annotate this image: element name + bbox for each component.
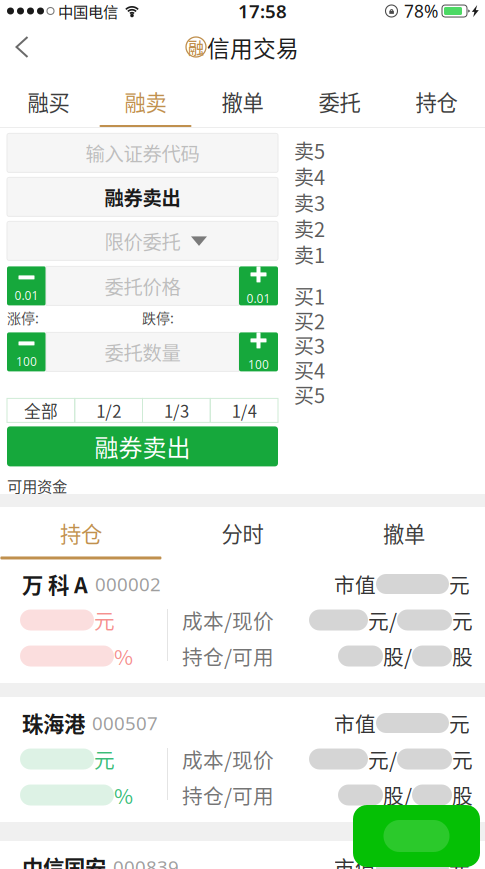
staticText: 市值: [334, 852, 376, 869]
staticText: 17:58: [238, 0, 287, 23]
staticText: 买5: [294, 380, 325, 409]
staticText: 元: [94, 605, 115, 635]
button[interactable]: 返回: [0, 22, 45, 72]
staticText: 万 科 A: [22, 569, 88, 599]
staticText: 100: [16, 353, 37, 369]
staticText: 持仓: [60, 518, 102, 548]
staticText: 跌停:: [142, 307, 174, 328]
staticText: 融: [188, 35, 204, 59]
button[interactable]: 融买: [0, 72, 97, 127]
staticText: 股: [452, 780, 473, 810]
button[interactable]: 减少0.01: [7, 266, 46, 305]
staticText: 融买: [27, 86, 69, 117]
staticText: 可用资金: [7, 474, 67, 497]
staticText: 卖5: [294, 136, 325, 165]
button[interactable]: 1/2: [75, 398, 143, 422]
staticText: 全部: [24, 398, 58, 422]
button[interactable]: 持仓: [0, 507, 162, 558]
staticText: 卖4: [294, 162, 325, 191]
staticText: 元: [449, 708, 470, 738]
button[interactable]: 增加100: [239, 332, 278, 371]
staticText: 1/3: [164, 398, 189, 422]
button[interactable]: 撤单: [194, 72, 291, 127]
staticText: 元: [449, 852, 470, 869]
staticText: 卖1: [294, 240, 325, 269]
staticText: 买4: [294, 355, 325, 384]
staticText: 持仓: [415, 86, 457, 117]
button[interactable]: 持仓: [388, 72, 485, 127]
button[interactable]: 分时: [162, 507, 323, 558]
staticText: 000839: [113, 855, 179, 869]
staticText: 78%: [404, 0, 438, 22]
button[interactable]: 珠海港: [0, 697, 485, 822]
staticText: 卖3: [294, 188, 325, 217]
staticText: 中国电信: [58, 0, 118, 22]
button[interactable]: 融券卖出: [7, 426, 278, 466]
staticText: 市值: [334, 708, 376, 738]
staticText: 信用交易: [207, 31, 299, 63]
staticText: 0.01: [246, 290, 270, 306]
button[interactable]: 增加0.01: [239, 266, 278, 305]
staticText: %: [114, 780, 133, 810]
staticText: 0.01: [14, 287, 38, 303]
staticText: 融券卖出: [94, 429, 190, 464]
staticText: 持仓/可用: [182, 780, 274, 810]
staticText: 卖2: [294, 214, 325, 243]
staticText: 委托: [318, 86, 360, 117]
button[interactable]: 减少100: [7, 332, 46, 371]
staticText: 元/: [368, 605, 397, 635]
staticText: 买2: [294, 306, 325, 335]
staticText: 买3: [294, 331, 325, 360]
staticText: 元: [94, 744, 115, 774]
staticText: 100: [248, 356, 269, 372]
staticText: 成本/现价: [182, 744, 274, 774]
button[interactable]: 万 科 A: [0, 558, 485, 683]
staticText: 委托数量: [104, 338, 180, 366]
staticText: 撤单: [221, 86, 263, 117]
staticText: 1/2: [96, 398, 121, 422]
staticText: 珠海港: [22, 708, 85, 738]
button[interactable]: 快捷买卖: [353, 805, 480, 867]
staticText: 中信国安: [22, 852, 106, 869]
staticText: 元: [452, 744, 473, 774]
button[interactable]: 限价委托: [7, 221, 278, 260]
button[interactable]: 委托: [291, 72, 388, 127]
staticText: 分时: [221, 518, 263, 548]
staticText: 股: [452, 641, 473, 671]
staticText: 委托价格: [104, 272, 180, 300]
button[interactable]: 中信国安: [0, 841, 485, 869]
staticText: 股/: [383, 780, 412, 810]
staticText: 持仓/可用: [182, 641, 274, 671]
staticText: 市值: [334, 569, 376, 599]
staticText: 股/: [383, 641, 412, 671]
staticText: 000002: [95, 572, 161, 596]
button[interactable]: 融卖: [97, 72, 194, 127]
staticText: 输入证券代码: [85, 139, 199, 167]
staticText: 元/: [368, 744, 397, 774]
staticText: %: [114, 641, 133, 671]
button[interactable]: 1/4: [210, 398, 278, 422]
staticText: 1/4: [232, 398, 257, 422]
staticText: 成本/现价: [182, 605, 274, 635]
button[interactable]: 1/3: [142, 398, 210, 422]
button[interactable]: 全部: [7, 398, 75, 422]
staticText: 000507: [92, 711, 158, 735]
staticText: 限价委托: [104, 227, 180, 255]
staticText: 元: [452, 605, 473, 635]
staticText: 买1: [294, 281, 325, 310]
staticText: 涨停:: [7, 307, 39, 328]
staticText: 元: [449, 569, 470, 599]
staticText: 撤单: [383, 518, 425, 548]
staticText: 融券卖出: [104, 183, 180, 211]
button[interactable]: 撤单: [323, 507, 485, 558]
staticText: 融卖: [124, 86, 166, 117]
